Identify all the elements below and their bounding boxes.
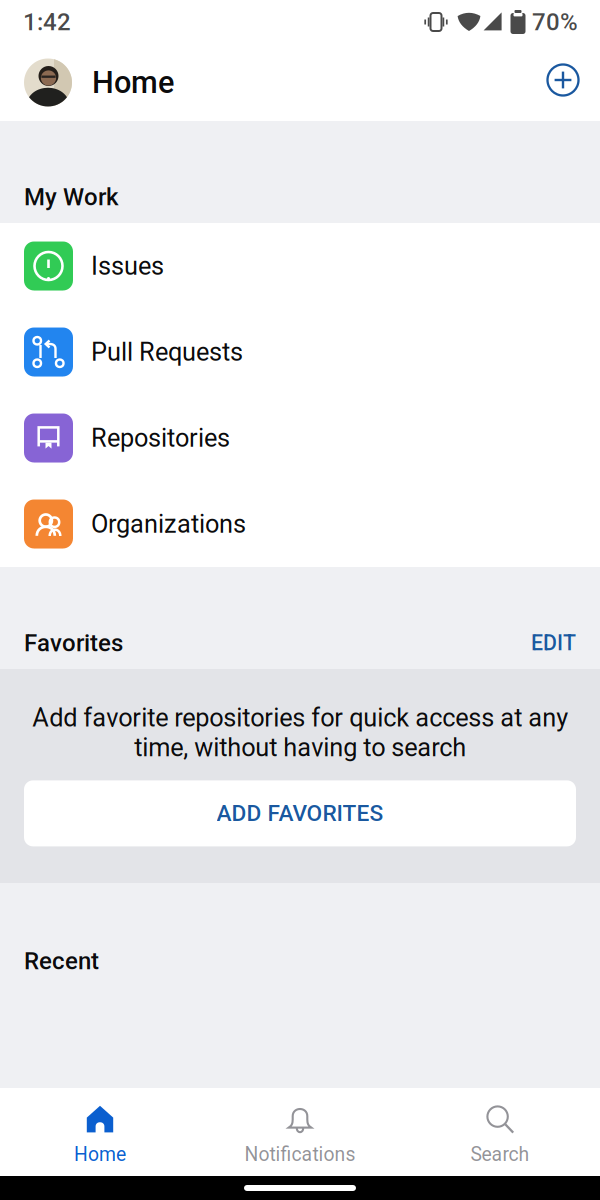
button[interactable]: Home <box>0 1088 200 1176</box>
staticText: Recent <box>24 947 99 975</box>
button[interactable]: Search <box>400 1088 600 1176</box>
button[interactable]: EDIT <box>531 630 576 655</box>
staticText: ADD FAVORITES <box>216 800 383 827</box>
staticText: Repositories <box>91 423 230 453</box>
staticText: 70% <box>532 8 578 36</box>
staticText: 1:42 <box>23 8 71 36</box>
staticText: Search <box>470 1143 529 1166</box>
button[interactable]: Organizations <box>0 481 600 567</box>
staticText: Add favorite repositories for quick acce… <box>32 703 568 762</box>
staticText: EDIT <box>531 630 576 655</box>
staticText: Home <box>74 1143 126 1166</box>
staticText: Favorites <box>24 629 123 657</box>
staticText: Organizations <box>91 509 246 539</box>
button[interactable]: ADD FAVORITES <box>24 780 576 846</box>
staticText: Pull Requests <box>91 337 243 367</box>
button[interactable]: Create new <box>541 58 585 107</box>
button[interactable]: Pull Requests <box>0 309 600 395</box>
button[interactable]: Notifications <box>200 1088 400 1176</box>
staticText: My Work <box>24 183 119 211</box>
staticText: Home <box>92 64 174 100</box>
button[interactable]: Repositories <box>0 395 600 481</box>
button[interactable]: Issues <box>0 223 600 309</box>
staticText: Issues <box>91 251 164 281</box>
staticText: Notifications <box>244 1143 355 1166</box>
button[interactable]: Profile <box>24 58 72 106</box>
